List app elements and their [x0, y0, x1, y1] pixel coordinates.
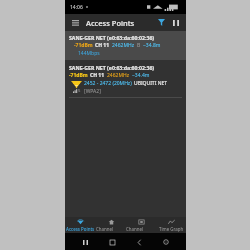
- staticText: Access Points: [66, 226, 95, 232]
- staticText: SANE-GER NET (e0:63:da:60:02:36): [69, 64, 155, 71]
- staticText: Time Graph: [159, 226, 184, 232]
- button[interactable]: Rotate screen: [159, 235, 173, 249]
- button[interactable]: SANE-GER NET (e0:63:da:60:02:36): [65, 31, 186, 60]
- button[interactable]: Pause scanning: [170, 17, 181, 28]
- staticText: CH 11: [95, 42, 110, 49]
- button[interactable]: Open navigation menu: [70, 18, 80, 28]
- button[interactable]: SANE-GER NET (e0:63:da:60:02:36): [65, 61, 186, 99]
- staticText: [WPA2]: [84, 88, 101, 95]
- button[interactable]: Channel Graph: [126, 217, 156, 233]
- button[interactable]: Back: [132, 235, 146, 249]
- staticText: CH 11: [90, 72, 105, 79]
- staticText: ~34.4m: [132, 72, 150, 79]
- staticText: B: [137, 42, 141, 49]
- staticText: -71dBm: [74, 42, 93, 49]
- staticText: 144Mbps: [78, 50, 100, 57]
- staticText: -71dBm: [69, 72, 88, 79]
- button[interactable]: Access Points: [65, 217, 96, 233]
- button[interactable]: Channel Rating: [96, 217, 126, 233]
- button[interactable]: Home: [105, 235, 119, 249]
- staticText: 2462MHz: [107, 72, 130, 79]
- button[interactable]: Recent apps: [78, 235, 92, 249]
- staticText: Channel Rating: [96, 226, 126, 232]
- staticText: 5: [78, 88, 81, 94]
- staticText: 2462MHz: [112, 42, 135, 49]
- staticText: Channel Graph: [126, 226, 156, 232]
- staticText: ~34.8m: [143, 42, 161, 49]
- staticText: UBIQUITI NET: [134, 80, 167, 87]
- staticText: 14:06: [70, 4, 83, 11]
- staticText: 2452 - 2472 (20MHz): [84, 80, 132, 87]
- staticText: SANE-GER NET (e0:63:da:60:02:36): [69, 34, 155, 41]
- staticText: Access Points: [86, 18, 135, 28]
- button[interactable]: Time Graph: [156, 217, 186, 233]
- button[interactable]: Filter: [156, 17, 167, 28]
